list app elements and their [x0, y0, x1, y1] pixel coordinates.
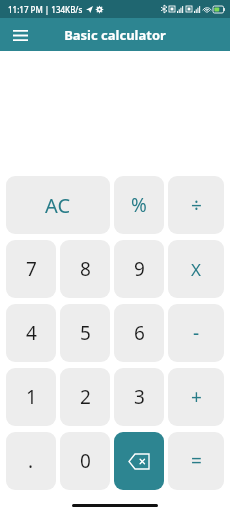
- button[interactable]: .: [6, 432, 56, 490]
- staticText: =: [191, 448, 202, 474]
- button[interactable]: Operator: [168, 304, 224, 362]
- staticText: 5: [80, 320, 91, 346]
- staticText: .: [28, 448, 34, 474]
- staticText: AC: [45, 192, 71, 219]
- staticText: 0: [80, 448, 91, 474]
- button[interactable]: 7: [6, 240, 56, 298]
- staticText: 1: [26, 384, 37, 410]
- button[interactable]: Backspace: [114, 432, 164, 490]
- button[interactable]: 2: [60, 368, 110, 426]
- staticText: -: [193, 320, 200, 346]
- button[interactable]: 0: [60, 432, 110, 490]
- button[interactable]: Open navigation menu: [6, 21, 34, 49]
- staticText: X: [191, 258, 201, 281]
- staticText: 9: [134, 256, 145, 282]
- staticText: +: [191, 384, 202, 410]
- staticText: 11:17 PM | 134KB/s: [8, 4, 83, 15]
- button[interactable]: 6: [114, 304, 164, 362]
- staticText: 6: [134, 320, 145, 346]
- button[interactable]: Divide: [168, 176, 224, 234]
- staticText: 7: [26, 256, 37, 282]
- button[interactable]: Percent: [114, 176, 164, 234]
- staticText: 2: [80, 384, 91, 410]
- button[interactable]: Equals: [168, 432, 224, 490]
- button[interactable]: 5: [60, 304, 110, 362]
- button[interactable]: All clear: [6, 176, 110, 234]
- button[interactable]: Operator: [168, 240, 224, 298]
- staticText: 4: [26, 320, 37, 346]
- staticText: ÷: [191, 192, 202, 218]
- staticText: Basic calculator: [64, 26, 166, 44]
- button[interactable]: 1: [6, 368, 56, 426]
- button[interactable]: 9: [114, 240, 164, 298]
- staticText: 3: [134, 384, 145, 410]
- button[interactable]: 4: [6, 304, 56, 362]
- button[interactable]: Operator: [168, 368, 224, 426]
- button[interactable]: 8: [60, 240, 110, 298]
- staticText: 8: [80, 256, 91, 282]
- button[interactable]: 3: [114, 368, 164, 426]
- staticText: %: [131, 192, 147, 218]
